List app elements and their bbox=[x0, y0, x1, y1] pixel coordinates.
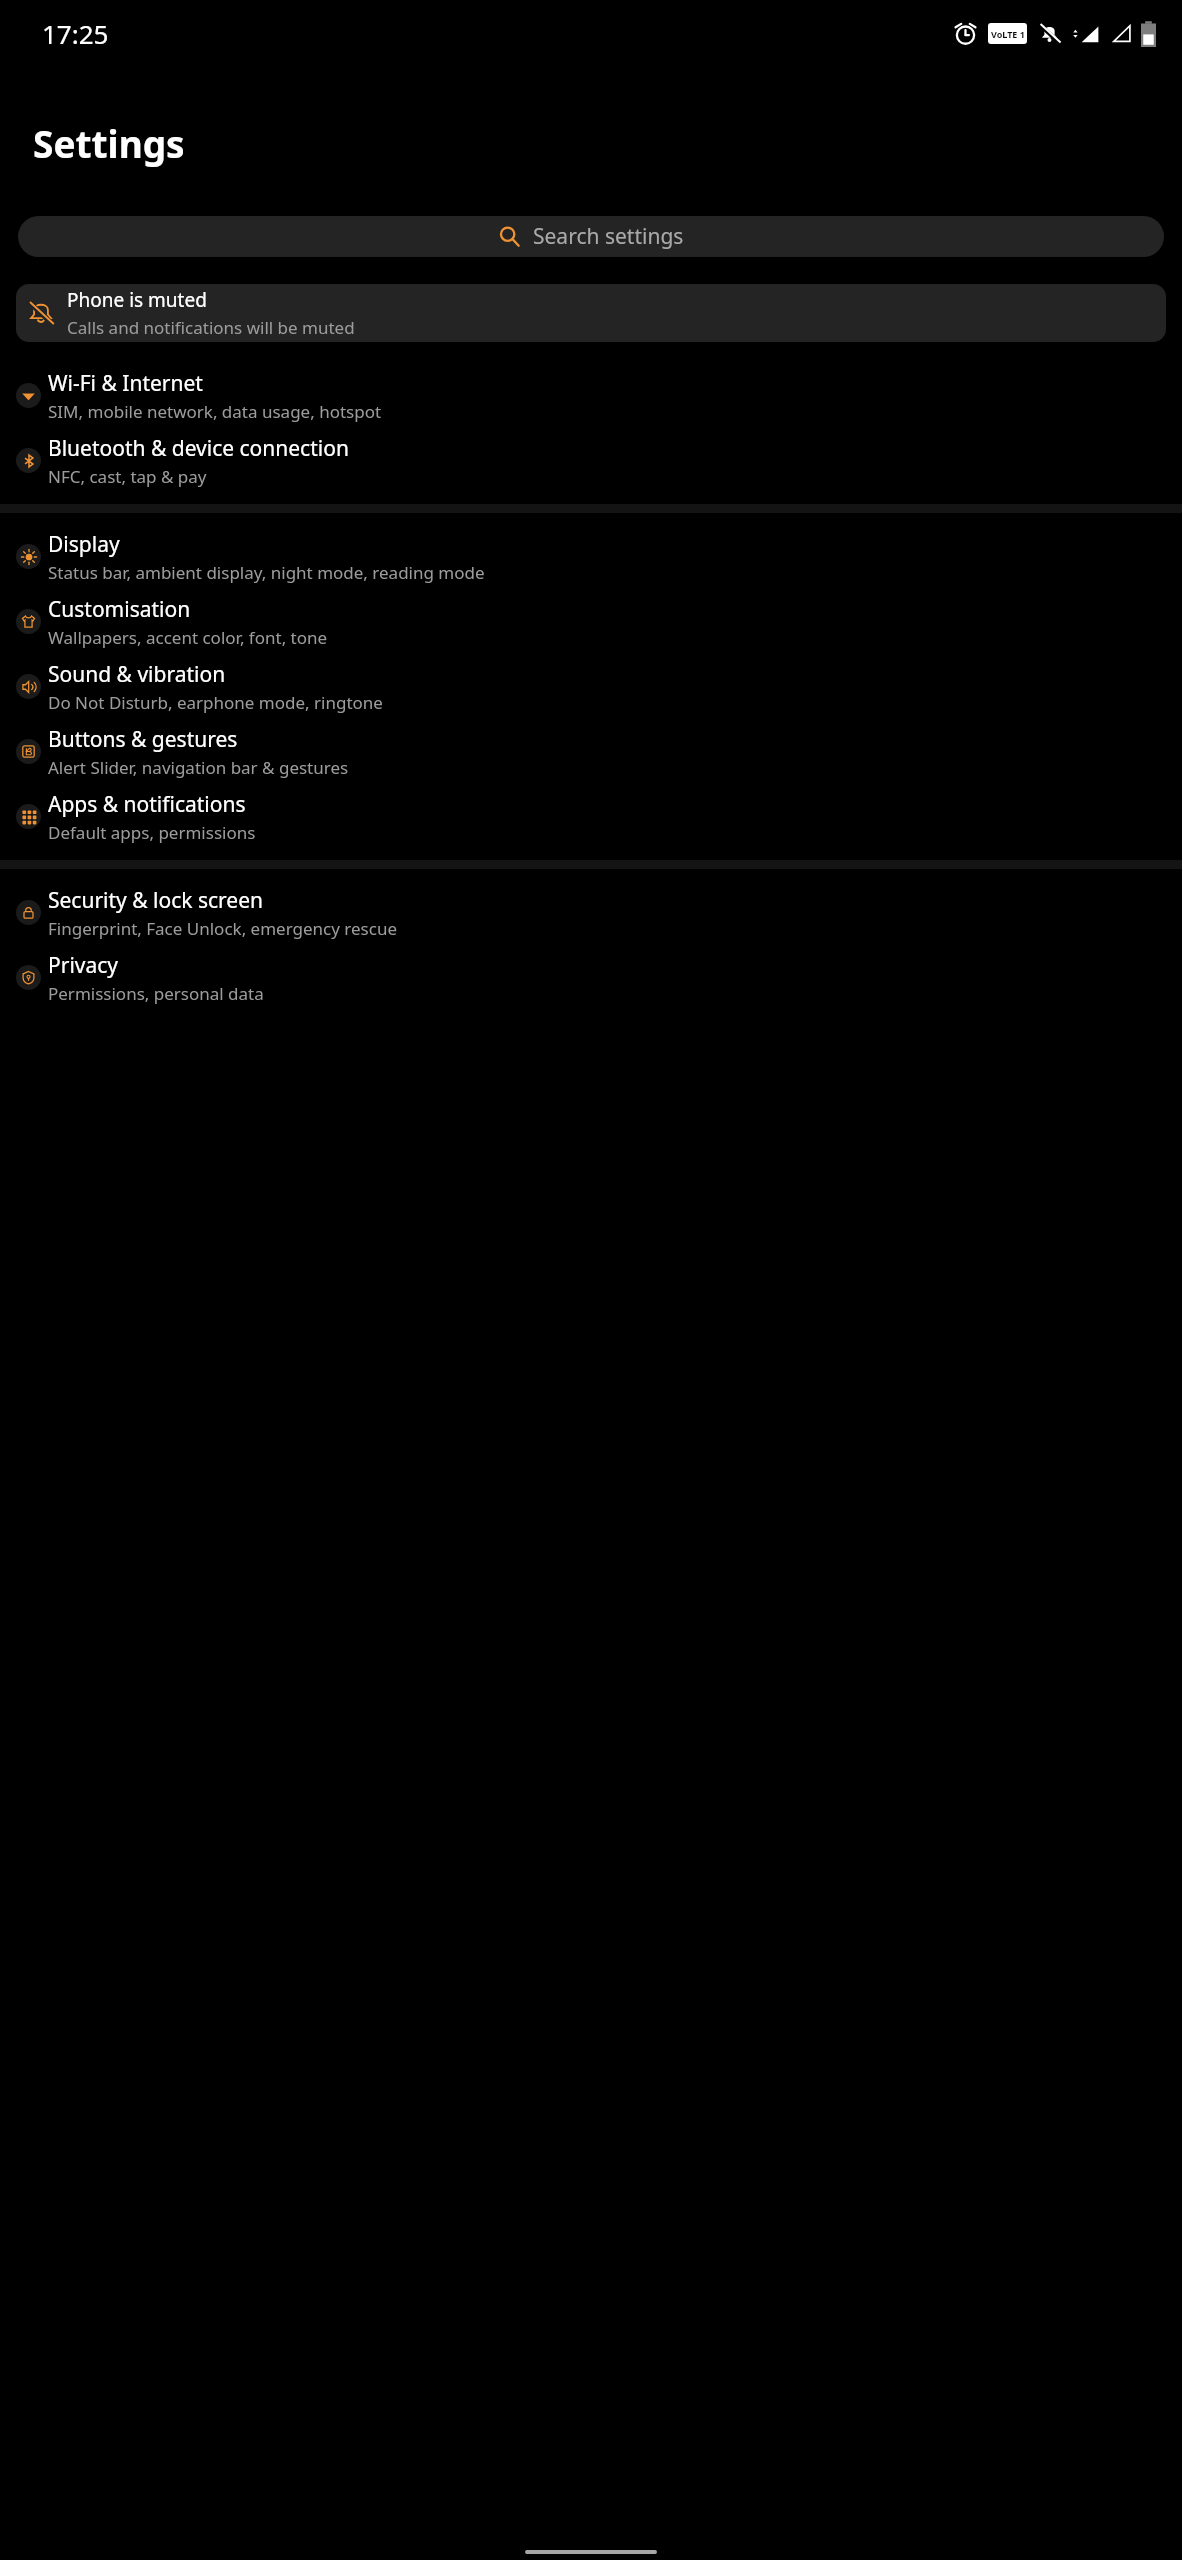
button[interactable]: Buttons & gestures bbox=[0, 719, 1182, 784]
staticText: Apps & notifications bbox=[48, 790, 246, 819]
staticText: Default apps, permissions bbox=[48, 821, 256, 844]
button[interactable]: Display bbox=[0, 524, 1182, 589]
staticText: VoLTE 1 bbox=[991, 28, 1025, 40]
button[interactable]: Phone is muted bbox=[16, 284, 1166, 342]
staticText: Buttons & gestures bbox=[48, 725, 238, 754]
staticText: Wallpapers, accent color, font, tone bbox=[48, 626, 328, 649]
button[interactable]: Security & lock screen bbox=[0, 880, 1182, 945]
staticText: Alert Slider, navigation bar & gestures bbox=[48, 756, 349, 779]
staticText: Wi-Fi & Internet bbox=[48, 369, 203, 398]
staticText: Display bbox=[48, 530, 120, 559]
button[interactable]: Apps & notifications bbox=[0, 784, 1182, 849]
button[interactable]: Bluetooth & device connection bbox=[0, 428, 1182, 493]
staticText: Status bar, ambient display, night mode,… bbox=[48, 561, 485, 584]
staticText: Customisation bbox=[48, 595, 191, 624]
staticText: Do Not Disturb, earphone mode, ringtone bbox=[48, 691, 383, 714]
staticText: Phone is muted bbox=[67, 287, 207, 313]
button[interactable]: Search settings bbox=[18, 216, 1164, 257]
staticText: Search settings bbox=[533, 222, 684, 251]
staticText: Bluetooth & device connection bbox=[48, 434, 349, 463]
staticText: 17:25 bbox=[42, 16, 109, 51]
staticText: SIM, mobile network, data usage, hotspot bbox=[48, 400, 382, 423]
staticText: Settings bbox=[33, 118, 185, 168]
staticText: Fingerprint, Face Unlock, emergency resc… bbox=[48, 917, 397, 940]
button[interactable]: Privacy bbox=[0, 945, 1182, 1010]
button[interactable]: Customisation bbox=[0, 589, 1182, 654]
staticText: Privacy bbox=[48, 951, 119, 980]
staticText: Permissions, personal data bbox=[48, 982, 264, 1005]
staticText: NFC, cast, tap & pay bbox=[48, 465, 207, 488]
staticText: Sound & vibration bbox=[48, 660, 226, 689]
staticText: Calls and notifications will be muted bbox=[67, 316, 355, 339]
staticText: Security & lock screen bbox=[48, 886, 264, 915]
button[interactable]: Sound & vibration bbox=[0, 654, 1182, 719]
button[interactable]: Wi-Fi & Internet bbox=[0, 363, 1182, 428]
